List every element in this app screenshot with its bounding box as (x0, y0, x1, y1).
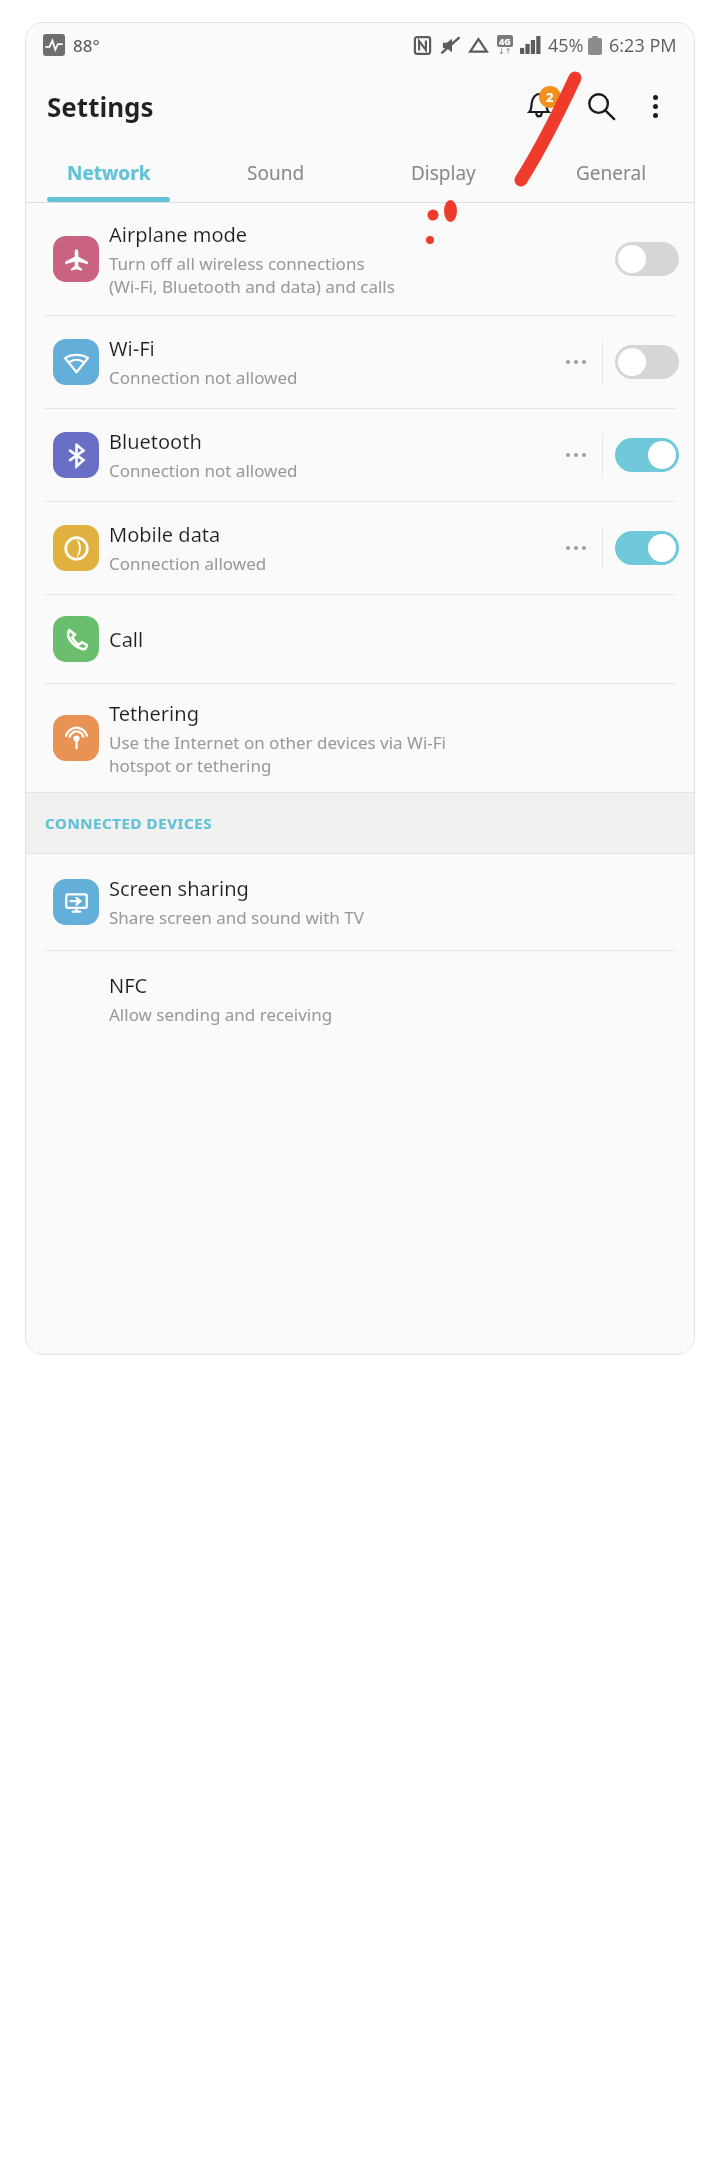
staticText: Connection not allowed (109, 459, 298, 482)
staticText: Share screen and sound with TV (109, 906, 364, 929)
staticText: Sound (247, 160, 305, 186)
button[interactable]: General (527, 144, 695, 202)
button[interactable]: Tethering (25, 684, 695, 792)
staticText: Display (411, 160, 476, 186)
button[interactable]: Mobile data (25, 502, 695, 595)
staticText: Network (67, 160, 151, 186)
staticText: Wi-Fi (109, 335, 155, 362)
button[interactable] (615, 531, 679, 565)
button[interactable] (615, 345, 679, 379)
staticText: 45% (548, 33, 584, 58)
button[interactable]: Wi-Fi (25, 316, 695, 409)
staticText: Connection allowed (109, 552, 267, 575)
button[interactable]: Bluetooth (25, 409, 695, 502)
staticText: Airplane mode (109, 221, 248, 248)
button[interactable]: NFC (25, 951, 695, 1047)
button[interactable]: Network (25, 144, 192, 202)
button[interactable]: Screen sharing (25, 854, 695, 951)
staticText: NFC (109, 972, 148, 999)
staticText: 2 (546, 88, 554, 106)
button[interactable] (615, 242, 679, 276)
staticText: Call (109, 626, 144, 653)
staticText: Turn off all wireless connections (Wi-Fi… (109, 252, 395, 298)
button[interactable] (615, 438, 679, 472)
staticText: Settings (47, 89, 154, 124)
staticText: Bluetooth (109, 428, 202, 455)
staticText: ↓↑ (498, 47, 512, 56)
button[interactable]: Search (573, 78, 629, 134)
staticText: Use the Internet on other devices via Wi… (109, 731, 446, 777)
button[interactable]: Sound (192, 144, 359, 202)
button[interactable]: Call (25, 595, 695, 684)
staticText: Mobile data (109, 521, 221, 548)
staticText: 6:23 PM (609, 33, 677, 58)
button[interactable]: Notifications (511, 78, 567, 134)
staticText: General (576, 160, 647, 186)
staticText: 88° (73, 34, 100, 57)
staticText: 4G (499, 35, 511, 47)
staticText: Allow sending and receiving (109, 1003, 333, 1026)
staticText: Tethering (109, 700, 199, 727)
staticText: Screen sharing (109, 875, 249, 902)
staticText: CONNECTED DEVICES (45, 813, 213, 833)
button[interactable]: More options (631, 82, 679, 130)
button[interactable]: More options (550, 528, 602, 568)
staticText: Connection not allowed (109, 366, 298, 389)
button[interactable]: Display (359, 144, 527, 202)
button[interactable]: More options (550, 435, 602, 475)
button[interactable]: Airplane mode (25, 203, 695, 316)
button[interactable]: More options (550, 342, 602, 382)
